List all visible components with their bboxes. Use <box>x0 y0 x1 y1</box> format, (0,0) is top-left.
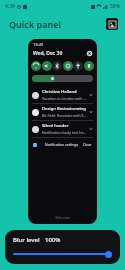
button[interactable]: Toggle 1 <box>42 61 52 71</box>
button[interactable]: Expand <box>89 127 93 131</box>
button[interactable]: Expand <box>89 93 93 97</box>
staticText: Christina Holland <box>42 89 77 95</box>
button[interactable]: Toggle 3 <box>63 61 73 71</box>
staticText: Notification body text here <box>42 130 87 135</box>
staticText: 4:39 <box>5 3 15 10</box>
staticText: Telecom <box>55 215 71 220</box>
staticText: Bit field: Resonate with Soul, Reinterp… <box>42 113 87 118</box>
button[interactable]: Settings <box>87 51 92 56</box>
button[interactable]: Brightness <box>32 75 93 82</box>
button[interactable]: Expand <box>89 110 93 114</box>
staticText: 13:45 <box>33 42 44 47</box>
button[interactable]: Toggle 4 <box>73 61 83 71</box>
staticText: Vacation in London with family <box>42 96 87 101</box>
button[interactable]: Wallpaper preview <box>106 18 118 30</box>
staticText: Quick panel <box>9 18 61 30</box>
button[interactable]: Toggle 0 <box>31 61 41 71</box>
button[interactable]: Toggle 5 <box>84 61 94 71</box>
staticText: 58% <box>110 3 120 10</box>
button[interactable]: Clear <box>83 142 92 147</box>
staticText: Silent header <box>42 123 69 129</box>
button[interactable]: Silent header <box>28 121 97 137</box>
button[interactable]: Blur level <box>5 230 120 264</box>
staticText: 100% <box>45 236 61 244</box>
button[interactable]: Toggle 2 <box>52 61 62 71</box>
button[interactable]: Notification settings <box>45 142 79 147</box>
button[interactable]: Christina Holland <box>28 87 97 103</box>
staticText: Blur level <box>13 236 40 244</box>
staticText: Design Brainstorming <box>42 106 86 112</box>
button[interactable]: Design Brainstorming <box>28 104 97 120</box>
staticText: Wed, Dec 30 <box>33 50 63 57</box>
